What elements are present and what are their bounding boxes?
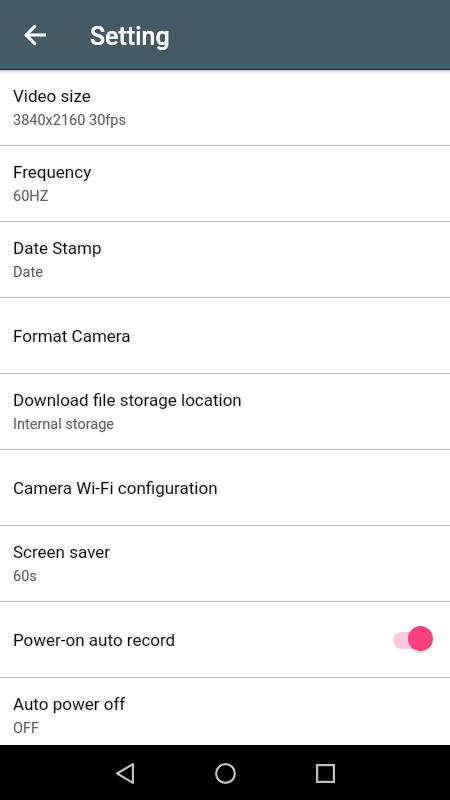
staticText: Camera Wi-Fi configuration [13,478,218,498]
button[interactable]: Screen saver [0,526,450,601]
staticText: 60HZ [13,188,49,205]
staticText: Internal storage [13,416,115,433]
staticText: Date Stamp [13,238,102,258]
staticText: Power-on auto record [13,630,176,650]
staticText: OFF [13,720,40,737]
staticText: Format Camera [13,326,131,346]
staticText: Setting [90,22,170,51]
button[interactable]: Auto power off [0,678,450,753]
button[interactable]: Back [11,11,59,59]
staticText: Date [13,264,43,281]
staticText: Auto power off [13,694,126,714]
button[interactable]: Download file storage location [0,374,450,449]
staticText: Screen saver [13,542,111,562]
button[interactable]: Recent apps [301,749,349,797]
button[interactable]: Home [201,749,249,797]
button[interactable]: Power-on auto record [0,602,450,677]
button[interactable]: Date Stamp [0,222,450,297]
button[interactable]: Format Camera [0,298,450,373]
button[interactable]: Video size [0,70,450,145]
staticText: Video size [13,86,91,106]
staticText: 60s [13,568,37,585]
button[interactable]: Power-on auto record toggle [393,626,433,654]
staticText: Download file storage location [13,390,242,410]
staticText: Frequency [13,162,92,182]
button[interactable]: Back [101,749,149,797]
button[interactable]: Camera Wi-Fi configuration [0,450,450,525]
button[interactable]: Frequency [0,146,450,221]
staticText: 3840x2160 30fps [13,112,126,129]
